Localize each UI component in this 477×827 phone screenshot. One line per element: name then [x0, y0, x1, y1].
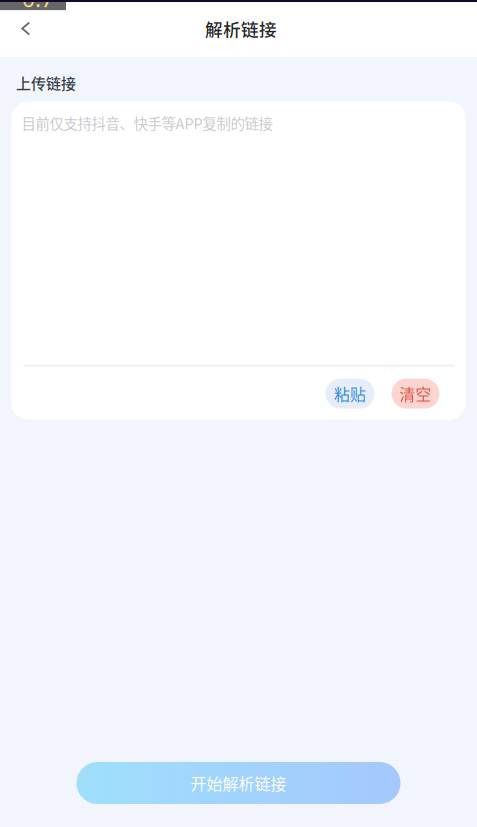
staticText: 解析链接: [205, 16, 277, 41]
staticText: 上传链接: [16, 72, 76, 94]
button[interactable]: 粘贴: [325, 379, 374, 409]
staticText: 清空: [399, 382, 431, 405]
button[interactable]: Back: [4, 6, 48, 50]
staticText: 粘贴: [334, 382, 366, 405]
staticText: 开始解析链接: [190, 771, 286, 795]
button[interactable]: 开始解析链接: [76, 762, 400, 804]
button[interactable]: 清空: [391, 379, 439, 409]
staticText: 目前仅支持抖音、快手等APP复制的链接: [21, 113, 272, 133]
staticText: 0.7: [22, 0, 54, 14]
